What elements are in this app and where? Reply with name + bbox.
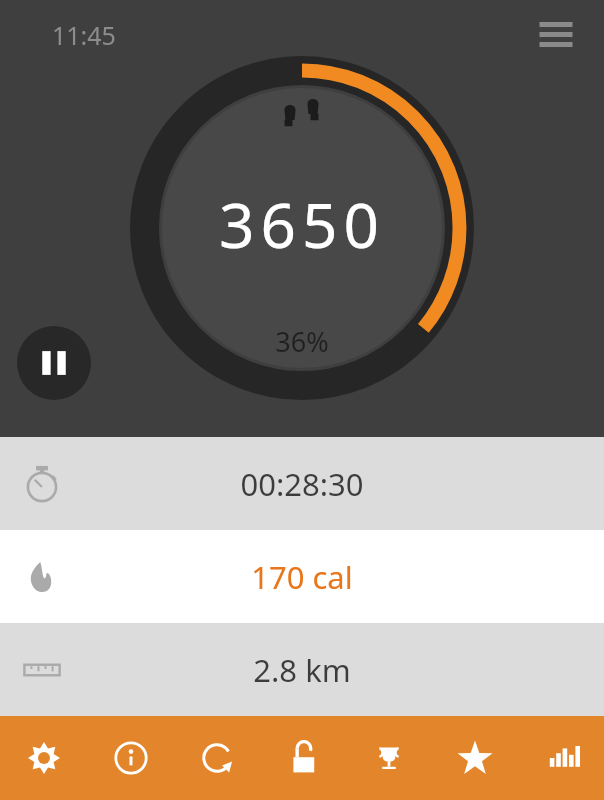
- button[interactable]: Favorites: [432, 716, 518, 800]
- button[interactable]: 2.8 km: [0, 623, 604, 716]
- button[interactable]: Menu: [530, 8, 582, 60]
- staticText: 2.8 km: [253, 649, 351, 691]
- staticText: 36%: [202, 323, 402, 360]
- button[interactable]: 00:28:30: [0, 437, 604, 530]
- staticText: 3650: [152, 182, 452, 266]
- button[interactable]: Info: [87, 716, 174, 800]
- staticText: 11:45: [52, 18, 116, 52]
- staticText: 170 cal: [251, 556, 353, 598]
- button[interactable]: Reset: [174, 716, 260, 800]
- button[interactable]: Statistics: [518, 716, 604, 800]
- button[interactable]: Step progress 36 percent: [130, 56, 474, 400]
- button[interactable]: Pause: [17, 326, 91, 400]
- button[interactable]: Lock: [260, 716, 346, 800]
- button[interactable]: Achievements: [346, 716, 432, 800]
- button[interactable]: Settings: [0, 716, 87, 800]
- button[interactable]: 170 cal: [0, 530, 604, 623]
- staticText: 00:28:30: [240, 463, 364, 505]
